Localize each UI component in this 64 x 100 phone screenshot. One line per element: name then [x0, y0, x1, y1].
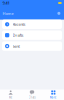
staticText: Drafts [12, 32, 23, 38]
staticText: Home [3, 11, 14, 16]
button[interactable]: Me [0, 89, 21, 100]
staticText: Sent [12, 43, 19, 49]
button[interactable]: More [43, 89, 64, 100]
staticText: Recents [12, 22, 25, 27]
staticText: Me [9, 96, 13, 99]
staticText: 9:41 [2, 0, 9, 6]
button[interactable]: Recents [2, 20, 62, 29]
button[interactable]: Drafts [2, 30, 62, 40]
button[interactable]: Profile [56, 11, 61, 16]
button[interactable]: Chats [21, 89, 43, 100]
staticText: More [50, 96, 57, 99]
button[interactable]: Sent [2, 41, 62, 51]
staticText: Chats [28, 96, 35, 99]
